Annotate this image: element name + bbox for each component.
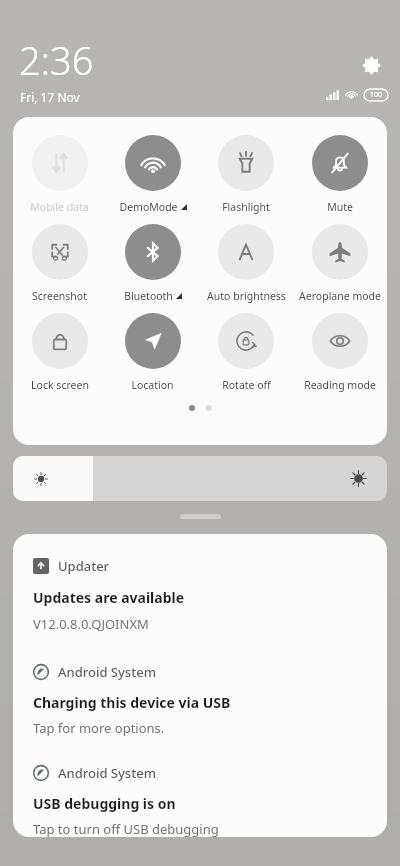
staticText: Screenshot [32,289,87,303]
staticText: Updater [58,557,110,575]
button[interactable]: Mute [293,134,387,215]
staticText: Android System [58,764,156,782]
button[interactable]: Mobile data [13,134,106,215]
staticText: Tap to turn off USB debugging [33,820,219,837]
staticText: Flashlight [222,200,270,214]
button[interactable]: DemoMode [106,134,199,215]
staticText: Charging this device via USB [33,693,231,712]
button[interactable]: Flashlight [199,134,293,215]
button[interactable]: Aeroplane mode [293,223,387,304]
button[interactable]: Screenshot [13,223,106,304]
staticText: Tap for more options. [33,719,165,737]
staticText: Fri, 17 Nov [20,89,80,105]
staticText: Reading mode [304,378,376,392]
button[interactable]: Updater [33,557,369,575]
button[interactable]: Brightness [13,456,387,501]
button[interactable]: Android System [33,663,369,681]
button[interactable]: Bluetooth [106,223,199,304]
staticText: 2:36 [19,34,94,86]
staticText: USB debugging is on [33,794,176,813]
button[interactable]: Location [106,312,199,393]
button[interactable]: Lock screen [13,312,106,393]
staticText: Lock screen [31,378,89,392]
button[interactable]: Auto brightness [199,223,293,304]
button[interactable]: Android System [33,764,369,782]
staticText: DemoMode [119,200,178,214]
staticText: Rotate off [222,378,271,392]
staticText: Location [131,378,174,392]
staticText: Updates are available [33,588,185,607]
staticText: Mobile data [30,200,89,214]
staticText: 100 [370,90,383,100]
button[interactable]: Rotate off [199,312,293,393]
button[interactable]: Reading mode [293,312,387,393]
staticText: Aeroplane mode [299,289,381,303]
staticText: V12.0.8.0.QJOINXM [33,615,149,633]
staticText: Android System [58,663,156,681]
staticText: Bluetooth [124,289,173,303]
staticText: Auto brightness [207,289,286,303]
button[interactable]: Settings [356,50,386,80]
staticText: Mute [327,200,353,214]
